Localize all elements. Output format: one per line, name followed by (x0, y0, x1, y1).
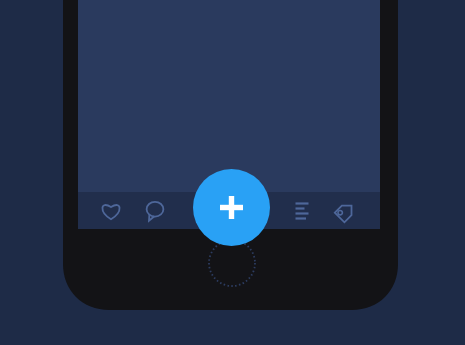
button[interactable]: Add (193, 169, 270, 246)
button[interactable]: Sort (286, 195, 318, 227)
button[interactable]: Likes (95, 195, 127, 227)
button[interactable]: Tags (329, 195, 361, 227)
button[interactable]: Comments (139, 195, 171, 227)
